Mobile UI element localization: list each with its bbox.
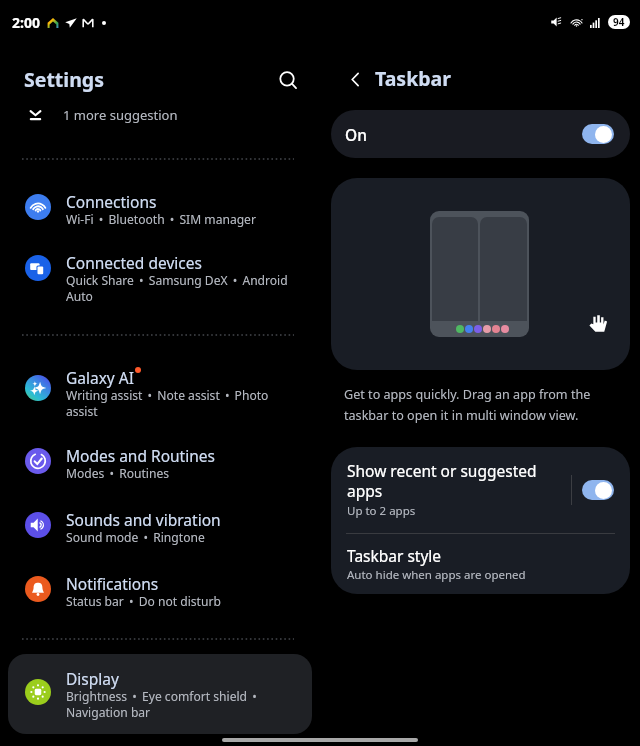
button[interactable]: Taskbar style xyxy=(331,534,630,594)
staticText: Connections xyxy=(66,191,157,212)
staticText: Brightness • Eye comfort shield • Naviga… xyxy=(66,688,296,720)
staticText: 1 more suggestion xyxy=(63,106,178,124)
other: Drag xyxy=(585,310,611,336)
button[interactable]: Connections xyxy=(0,190,320,248)
button[interactable]: Modes and Routines xyxy=(0,444,320,502)
staticText: Auto hide when apps are opened xyxy=(347,567,526,583)
button[interactable]: Toggle xyxy=(582,124,614,144)
button[interactable]: Connected devices xyxy=(0,251,320,309)
staticText: Wi-Fi • Bluetooth • SIM manager xyxy=(66,211,256,227)
button[interactable]: Show recent or suggested apps xyxy=(331,447,630,533)
staticText: Sound mode • Ringtone xyxy=(66,529,205,545)
staticText: On xyxy=(345,124,367,145)
button[interactable]: 1 more suggestion xyxy=(0,102,320,128)
staticText: 2:00 xyxy=(12,13,40,32)
staticText: Display xyxy=(66,668,119,689)
button[interactable]: Notifications xyxy=(0,572,320,630)
staticText: Modes and Routines xyxy=(66,445,215,466)
staticText: Taskbar style xyxy=(347,545,442,566)
button[interactable]: Search xyxy=(270,62,306,98)
staticText: Get to apps quickly. Drag an app from th… xyxy=(344,386,612,424)
staticText: 94 xyxy=(613,15,625,29)
staticText: Show recent or suggested apps xyxy=(347,460,565,502)
staticText: Status bar • Do not disturb xyxy=(66,593,221,609)
button[interactable]: Sounds and vibration xyxy=(0,508,320,566)
button[interactable]: Display xyxy=(8,654,312,734)
staticText: Writing assist • Note assist • Photo ass… xyxy=(66,387,294,419)
button[interactable]: Back xyxy=(338,62,372,96)
staticText: Up to 2 apps xyxy=(347,503,416,519)
button[interactable]: Toggle xyxy=(582,480,614,500)
staticText: Quick Share • Samsung DeX • Android Auto xyxy=(66,272,294,304)
staticText: Modes • Routines xyxy=(66,465,170,481)
button[interactable]: On xyxy=(331,110,630,158)
button[interactable]: Galaxy AI xyxy=(0,366,320,428)
staticText: Settings xyxy=(24,66,104,93)
staticText: Taskbar xyxy=(375,65,451,92)
staticText: Sounds and vibration xyxy=(66,509,221,530)
staticText: Connected devices xyxy=(66,252,202,273)
staticText: Notifications xyxy=(66,573,159,594)
staticText: Galaxy AI xyxy=(66,367,134,388)
